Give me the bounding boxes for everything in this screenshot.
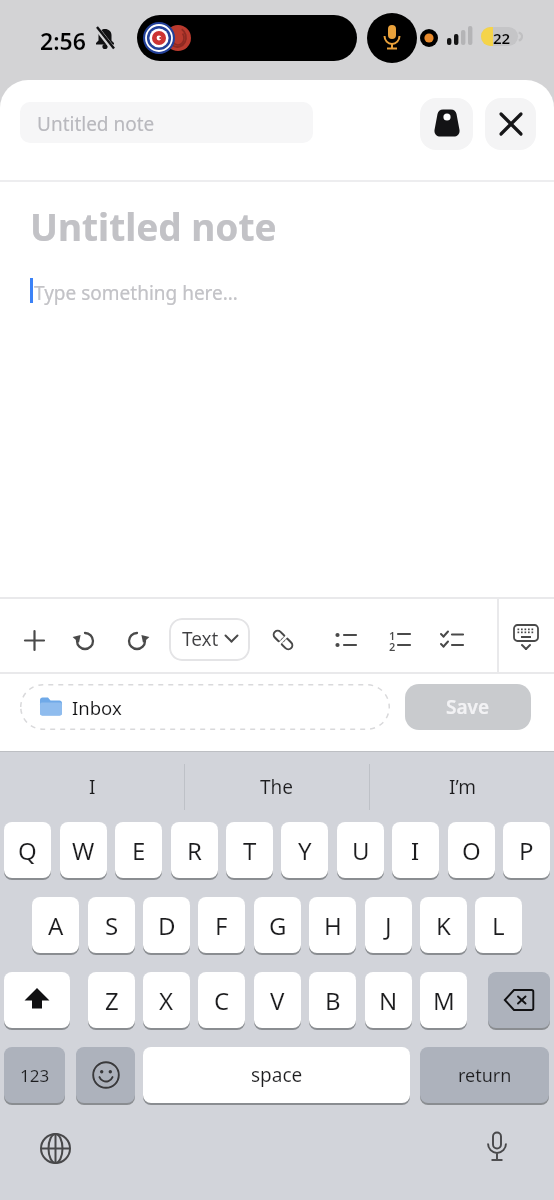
staticText: Q [18, 834, 37, 867]
staticText: X [159, 984, 174, 1017]
button[interactable]: W [60, 822, 107, 878]
staticText: Untitled note [37, 111, 155, 137]
button[interactable]: E [115, 822, 162, 878]
button[interactable] [326, 620, 366, 660]
staticText: Inbox [72, 695, 122, 720]
staticText: V [270, 984, 285, 1017]
staticText: The [260, 774, 294, 800]
staticText: I’m [449, 774, 476, 800]
staticText: T [243, 834, 257, 867]
button[interactable]: space [143, 1047, 410, 1103]
staticText: M [433, 984, 455, 1017]
button[interactable]: I’m [370, 751, 554, 822]
staticText: 123 [20, 1064, 50, 1087]
button[interactable]: S [88, 897, 135, 953]
button[interactable]: T [226, 822, 273, 878]
button[interactable]: Q [4, 822, 51, 878]
button[interactable]: I [0, 751, 184, 822]
button[interactable] [263, 620, 303, 660]
staticText: space [251, 1062, 303, 1088]
button[interactable]: V [254, 972, 301, 1028]
button[interactable] [485, 98, 536, 150]
staticText: C [214, 984, 230, 1017]
staticText: R [187, 834, 202, 867]
button[interactable] [76, 1047, 135, 1103]
button[interactable]: Y [281, 822, 328, 878]
button[interactable]: Save [405, 684, 531, 730]
staticText: N [379, 984, 398, 1017]
button[interactable]: A [32, 897, 79, 953]
button[interactable]: P [503, 822, 550, 878]
staticText: E [132, 834, 146, 867]
staticText: Untitled note [30, 201, 277, 251]
button[interactable]: X [143, 972, 190, 1028]
button[interactable] [14, 620, 54, 660]
staticText: G [269, 909, 287, 942]
staticText: F [215, 909, 228, 942]
button[interactable]: Z [88, 972, 135, 1028]
button[interactable]: Untitled note [20, 102, 313, 143]
button[interactable]: M [420, 972, 467, 1028]
button[interactable]: K [420, 897, 467, 953]
staticText: 2 [389, 639, 396, 654]
button[interactable]: J [365, 897, 412, 953]
button[interactable]: F [198, 897, 245, 953]
button[interactable]: U [337, 822, 384, 878]
staticText: B [325, 984, 341, 1017]
staticText: D [158, 909, 176, 942]
button[interactable]: return [420, 1047, 549, 1103]
staticText: Save [446, 694, 490, 720]
staticText: S [105, 909, 119, 942]
button[interactable]: N [365, 972, 412, 1028]
button[interactable] [432, 620, 472, 660]
staticText: H [324, 909, 342, 942]
staticText: 1 [389, 628, 396, 643]
staticText: Z [105, 984, 119, 1017]
staticText: O [462, 834, 481, 867]
staticText: A [48, 909, 64, 942]
staticText: Y [298, 834, 312, 867]
button[interactable]: L [475, 897, 522, 953]
button[interactable]: 123 [4, 1047, 65, 1103]
button[interactable]: B [309, 972, 356, 1028]
button[interactable]: 1 [380, 620, 420, 660]
staticText: Text [182, 626, 219, 652]
button[interactable] [420, 98, 473, 150]
button[interactable]: The [185, 751, 369, 822]
staticText: J [385, 909, 392, 942]
button[interactable] [488, 972, 550, 1028]
button[interactable] [472, 1123, 522, 1173]
staticText: I [89, 774, 96, 800]
staticText: Type something here… [34, 280, 238, 306]
button[interactable]: Inbox [20, 684, 390, 730]
button[interactable]: O [448, 822, 495, 878]
button[interactable] [117, 620, 157, 660]
staticText: L [492, 909, 505, 942]
staticText: 2:56 [40, 25, 86, 56]
button[interactable] [506, 618, 546, 658]
button[interactable]: D [143, 897, 190, 953]
button[interactable]: R [171, 822, 218, 878]
staticText: W [72, 834, 95, 867]
button[interactable] [65, 620, 105, 660]
staticText: 22 [493, 28, 511, 48]
button[interactable]: C [198, 972, 245, 1028]
staticText: I [411, 834, 420, 867]
button[interactable]: H [309, 897, 356, 953]
button[interactable]: Text [169, 618, 250, 661]
button[interactable]: G [254, 897, 301, 953]
staticText: P [519, 834, 534, 867]
staticText: return [458, 1063, 512, 1088]
staticText: U [352, 834, 370, 867]
button[interactable] [30, 1123, 80, 1173]
staticText: K [436, 909, 451, 942]
button[interactable]: I [392, 822, 439, 878]
button[interactable] [4, 972, 70, 1028]
